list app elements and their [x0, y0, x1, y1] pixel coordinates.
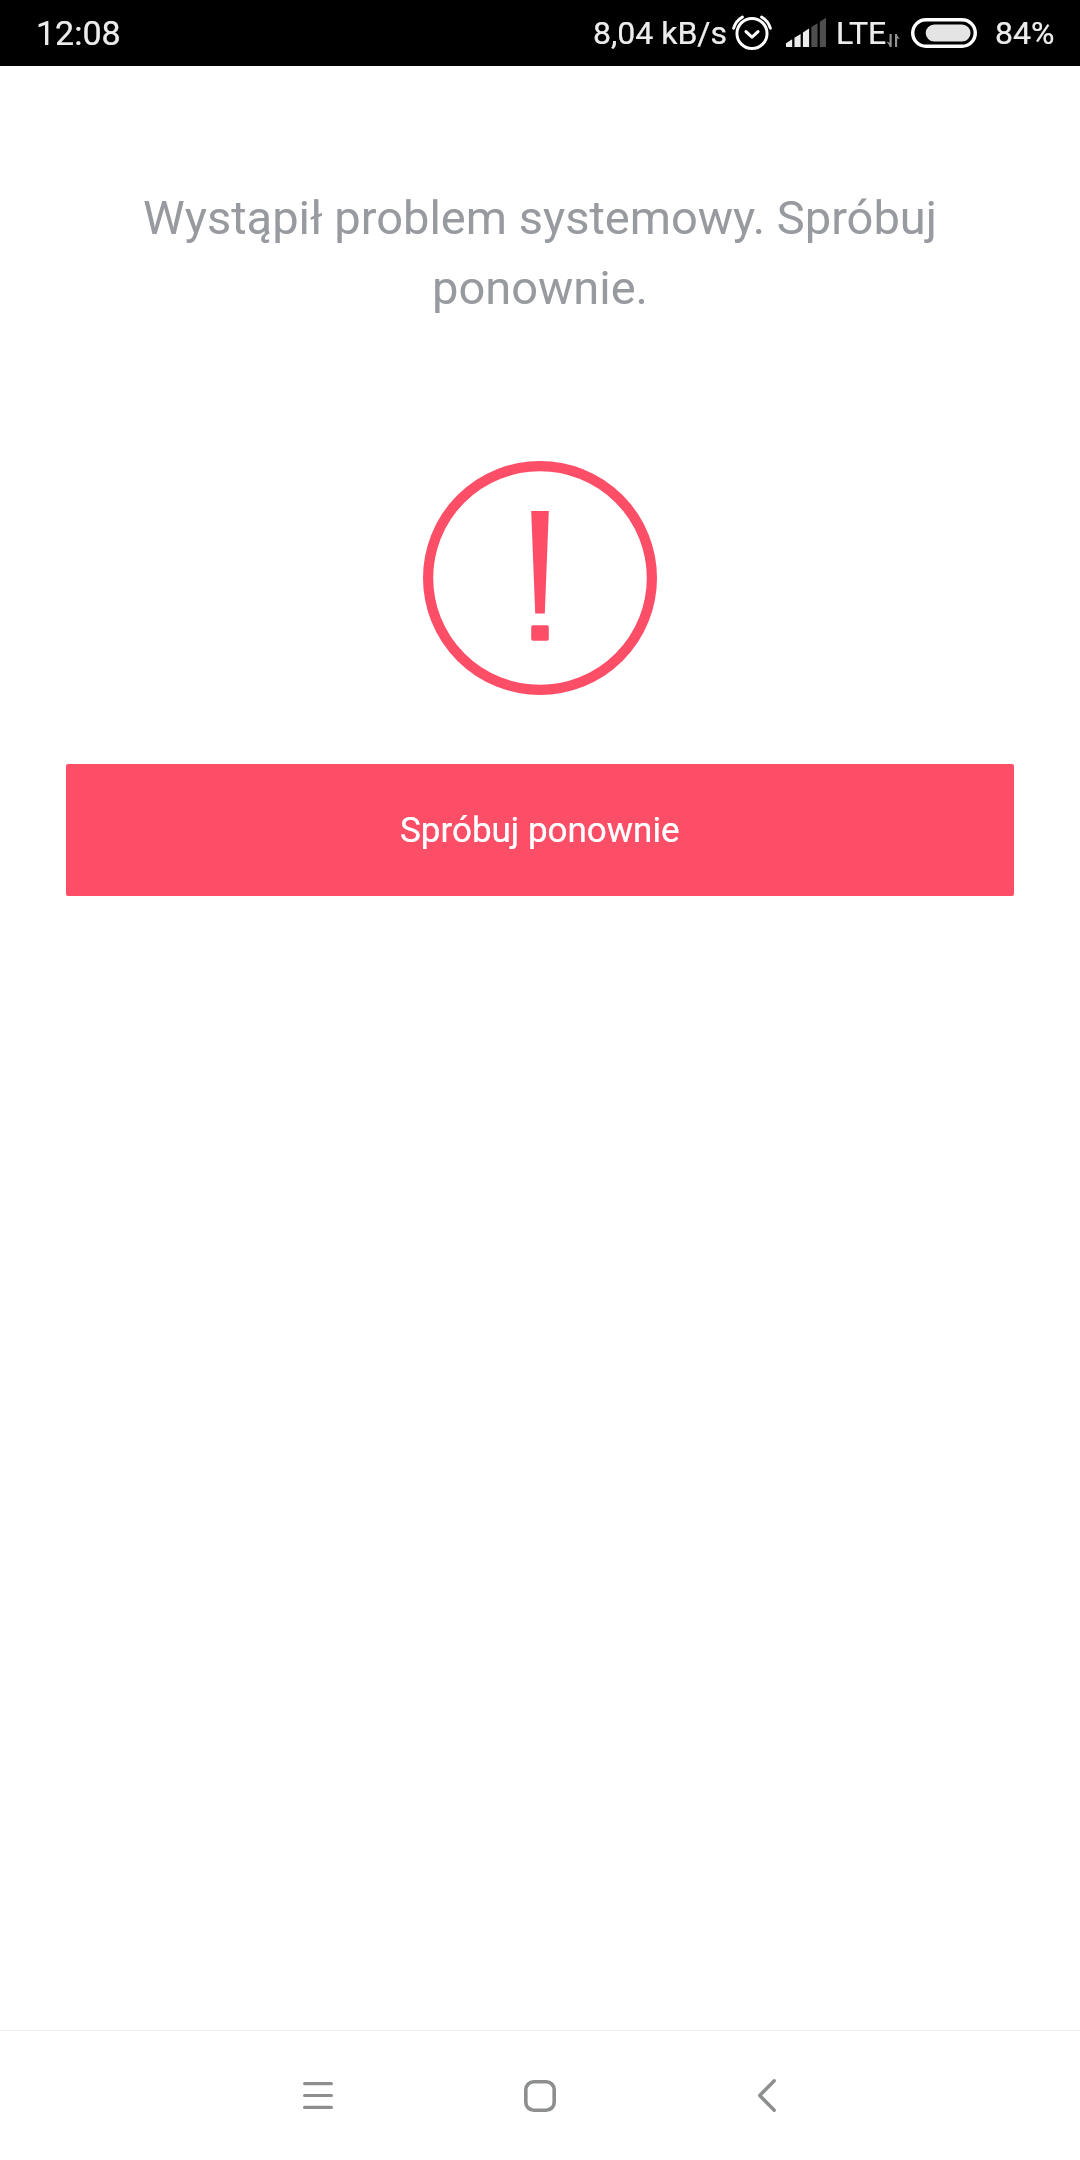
button[interactable]: Spróbuj ponownie — [66, 764, 1014, 896]
staticText: 8,04 kB/s — [593, 14, 728, 52]
staticText: Wystąpił problem systemowy. Spróbuj pono… — [70, 190, 1010, 316]
staticText: 12:08 — [36, 13, 121, 53]
button[interactable]: Home — [480, 2031, 600, 2160]
staticText: Spróbuj ponownie — [400, 810, 680, 851]
staticText: 84% — [995, 14, 1055, 52]
button[interactable]: Back — [707, 2031, 827, 2160]
staticText: LTE — [836, 14, 887, 52]
button[interactable]: Recent apps — [258, 2031, 378, 2160]
